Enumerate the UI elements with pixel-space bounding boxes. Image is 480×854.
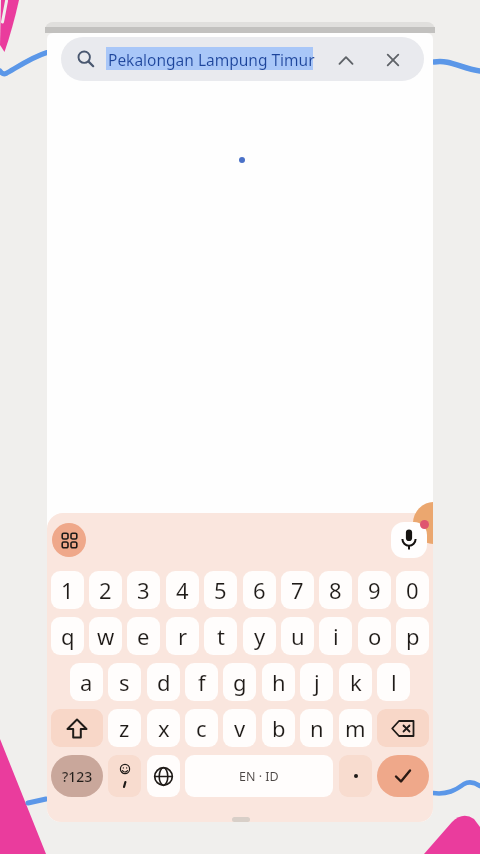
staticText: 8 xyxy=(329,575,342,605)
button[interactable]: g xyxy=(223,663,256,701)
button[interactable]: a xyxy=(70,663,103,701)
staticText: 6 xyxy=(253,575,266,605)
staticText: d xyxy=(157,667,171,697)
button[interactable] xyxy=(330,49,362,71)
staticText: e xyxy=(137,621,150,651)
staticText: x xyxy=(158,713,170,743)
button[interactable]: b xyxy=(262,709,295,747)
button[interactable]: k xyxy=(339,663,372,701)
button[interactable] xyxy=(379,48,407,72)
button[interactable]: o xyxy=(358,617,391,655)
staticText: 1 xyxy=(61,575,74,605)
button[interactable]: 1 xyxy=(51,571,84,609)
button[interactable]: l xyxy=(377,663,410,701)
staticText: ?123 xyxy=(62,767,93,786)
staticText: Pekalongan Lampung Timur xyxy=(108,49,315,70)
button[interactable]: m xyxy=(339,709,372,747)
staticText: n xyxy=(310,713,324,743)
button[interactable]: d xyxy=(147,663,180,701)
button[interactable]: w xyxy=(89,617,122,655)
button[interactable]: 9 xyxy=(358,571,391,609)
staticText: 4 xyxy=(176,575,189,605)
staticText: h xyxy=(272,667,286,697)
button[interactable] xyxy=(52,523,86,557)
button[interactable]: n xyxy=(300,709,333,747)
staticText: t xyxy=(217,621,225,651)
button[interactable] xyxy=(51,709,103,747)
staticText: 7 xyxy=(291,575,304,605)
staticText: o xyxy=(368,621,382,651)
button[interactable]: 5 xyxy=(204,571,237,609)
button[interactable] xyxy=(377,755,429,797)
button[interactable]: h xyxy=(262,663,295,701)
staticText: 3 xyxy=(137,575,150,605)
button[interactable] xyxy=(147,755,180,797)
button[interactable]: u xyxy=(281,617,314,655)
button[interactable]: v xyxy=(223,709,256,747)
button[interactable] xyxy=(339,755,372,797)
button[interactable]: 4 xyxy=(166,571,199,609)
staticText: u xyxy=(291,621,305,651)
staticText: w xyxy=(97,621,115,651)
button[interactable]: q xyxy=(51,617,84,655)
button[interactable]: 7 xyxy=(281,571,314,609)
button[interactable]: EN · ID xyxy=(185,755,333,797)
staticText: m xyxy=(345,713,366,743)
button[interactable]: z xyxy=(108,709,141,747)
button[interactable]: c xyxy=(185,709,218,747)
button[interactable]: j xyxy=(300,663,333,701)
button[interactable]: x xyxy=(147,709,180,747)
staticText: a xyxy=(80,667,93,697)
button[interactable]: p xyxy=(396,617,429,655)
staticText: f xyxy=(198,667,206,697)
staticText: s xyxy=(119,667,130,697)
staticText: g xyxy=(233,667,247,697)
button[interactable]: 6 xyxy=(243,571,276,609)
staticText: z xyxy=(119,713,130,743)
button[interactable]: f xyxy=(185,663,218,701)
staticText: i xyxy=(333,621,339,651)
button[interactable] xyxy=(377,709,429,747)
button[interactable]: Pekalongan Lampung Timur xyxy=(61,37,424,81)
button[interactable]: 2 xyxy=(89,571,122,609)
button[interactable] xyxy=(391,522,427,558)
button[interactable]: s xyxy=(108,663,141,701)
button[interactable]: 3 xyxy=(127,571,160,609)
staticText: 9 xyxy=(368,575,381,605)
staticText: j xyxy=(314,667,320,697)
staticText: 5 xyxy=(214,575,227,605)
staticText: v xyxy=(234,713,246,743)
button[interactable]: 8 xyxy=(319,571,352,609)
button[interactable]: ?123 xyxy=(51,755,103,797)
button[interactable] xyxy=(108,755,141,797)
button[interactable]: 0 xyxy=(396,571,429,609)
button[interactable]: e xyxy=(127,617,160,655)
staticText: l xyxy=(391,667,397,697)
staticText: EN · ID xyxy=(239,768,279,785)
staticText: r xyxy=(178,621,188,651)
staticText: p xyxy=(406,621,420,651)
staticText: y xyxy=(254,621,266,651)
staticText: 0 xyxy=(406,575,419,605)
staticText: k xyxy=(350,667,362,697)
button[interactable]: t xyxy=(204,617,237,655)
staticText: b xyxy=(272,713,286,743)
staticText: q xyxy=(61,621,75,651)
button[interactable]: r xyxy=(166,617,199,655)
staticText: 2 xyxy=(99,575,112,605)
staticText: c xyxy=(196,713,207,743)
button[interactable]: i xyxy=(319,617,352,655)
button[interactable]: y xyxy=(243,617,276,655)
